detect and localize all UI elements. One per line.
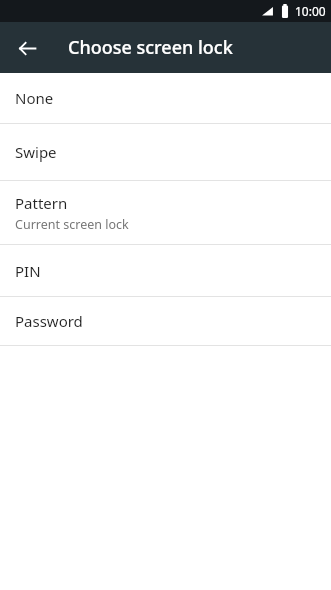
staticText: Current screen lock [15, 216, 129, 233]
button[interactable]: None [0, 73, 331, 123]
staticText: 10:00 [295, 3, 326, 19]
staticText: Pattern [15, 193, 68, 213]
button[interactable]: Pattern [0, 181, 331, 244]
button[interactable]: PIN [0, 245, 331, 296]
staticText: None [15, 88, 54, 108]
staticText: Choose screen lock [68, 35, 233, 60]
staticText: Swipe [15, 142, 57, 162]
staticText: PIN [15, 261, 41, 281]
button[interactable]: Swipe [0, 124, 331, 180]
button[interactable]: Back [10, 31, 44, 65]
staticText: Password [15, 311, 83, 331]
button[interactable]: Password [0, 297, 331, 345]
